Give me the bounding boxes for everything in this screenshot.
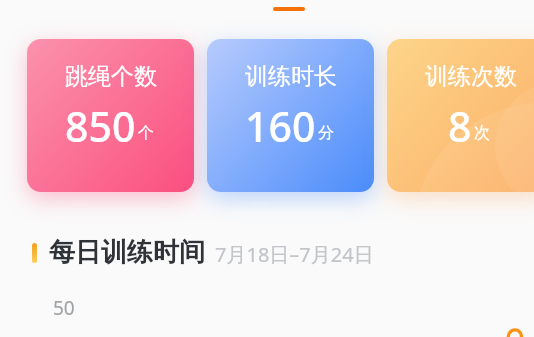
button[interactable]: Page indicator <box>273 7 305 11</box>
staticText: 个 <box>138 123 154 143</box>
staticText: 160 <box>245 98 316 154</box>
staticText: 8 <box>448 98 472 154</box>
staticText: 50 <box>53 295 75 321</box>
staticText: 训练时长 <box>245 62 337 91</box>
button[interactable]: 每日训练时间 <box>0 236 534 269</box>
staticText: 7月18日–7月24日 <box>215 241 374 268</box>
staticText: 分 <box>318 123 334 143</box>
button[interactable]: 跳绳个数 <box>27 39 194 192</box>
button[interactable]: 训练时长 <box>207 39 374 192</box>
staticText: 跳绳个数 <box>65 62 157 91</box>
staticText: 每日训练时间 <box>49 236 205 269</box>
staticText: 训练次数 <box>425 62 517 91</box>
button[interactable]: 训练次数 <box>387 39 534 192</box>
staticText: 次 <box>474 123 490 143</box>
staticText: 850 <box>65 98 136 154</box>
